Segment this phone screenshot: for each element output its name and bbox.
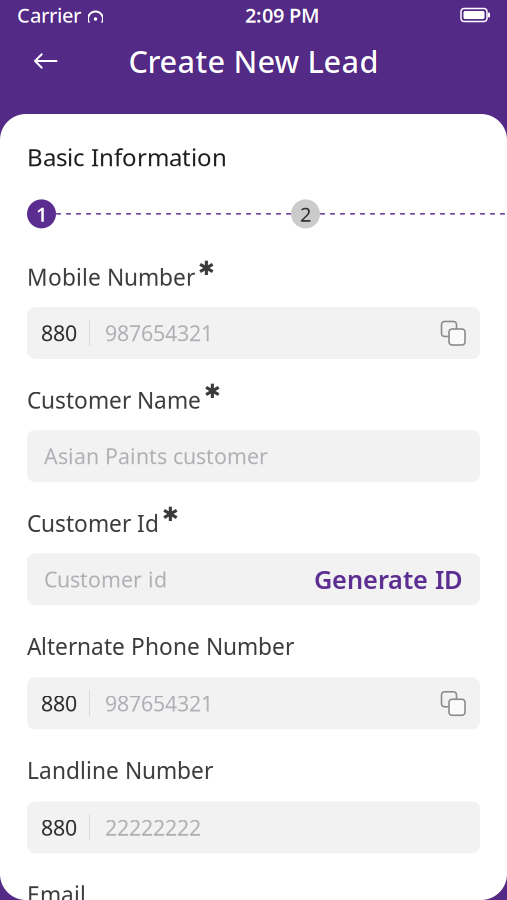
staticText: Landline Number: [27, 755, 213, 785]
staticText: Alternate Phone Number: [27, 631, 294, 661]
staticText: Customer Id: [27, 508, 159, 538]
button[interactable]: Copy number: [434, 320, 466, 346]
staticText: 987654321: [105, 319, 213, 347]
staticText: Asian Paints customer: [44, 442, 268, 470]
staticText: Create New Lead: [128, 41, 378, 81]
button[interactable]: Back: [24, 39, 68, 83]
staticText: 2: [300, 201, 311, 227]
staticText: 987654321: [105, 689, 213, 717]
staticText: Basic Information: [27, 141, 227, 173]
staticText: 1: [36, 201, 47, 227]
staticText: Customer Name: [27, 385, 201, 415]
staticText: Generate ID: [314, 562, 463, 596]
staticText: Email: [27, 879, 86, 900]
staticText: ✱: [162, 503, 179, 526]
button[interactable]: Generate ID: [314, 562, 463, 596]
staticText: 2:09 PM: [245, 2, 320, 28]
staticText: Mobile Number: [27, 262, 195, 292]
staticText: ✱: [198, 257, 215, 280]
staticText: Carrier: [17, 2, 81, 28]
staticText: 880: [41, 813, 77, 841]
staticText: 880: [41, 319, 77, 347]
button[interactable]: Copy number: [434, 690, 466, 716]
staticText: Customer id: [44, 565, 167, 593]
staticText: ✱: [204, 380, 221, 403]
staticText: 880: [41, 689, 77, 717]
staticText: 22222222: [105, 813, 201, 841]
